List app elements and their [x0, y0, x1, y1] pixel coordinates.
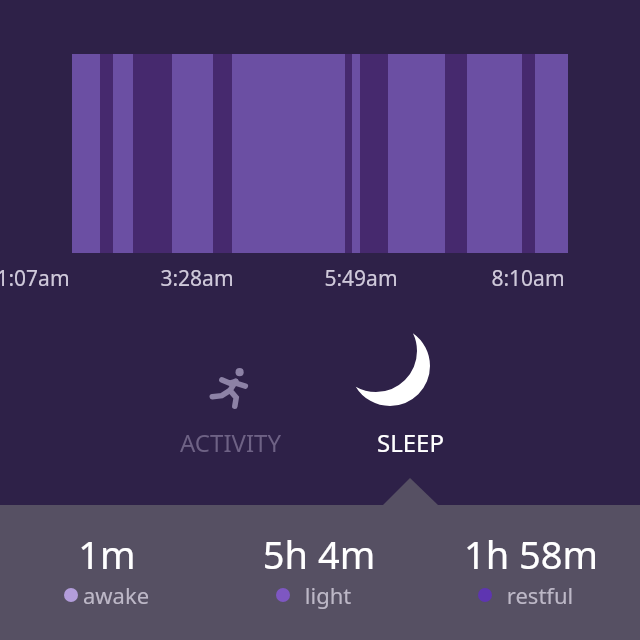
staticText: 1:07am [0, 264, 93, 293]
button[interactable]: 1m [7, 528, 207, 618]
staticText: 5h 4m [219, 528, 419, 580]
staticText: 5:49am [301, 264, 421, 293]
staticText: ACTIVITY [180, 426, 281, 459]
button[interactable]: 5h 4m [219, 528, 419, 618]
staticText: 1h 58m [431, 528, 631, 580]
staticText: 3:28am [137, 264, 257, 293]
staticText: SLEEP [377, 426, 444, 459]
button[interactable]: SLEEP [340, 358, 480, 468]
staticText: 8:10am [468, 264, 588, 293]
staticText: restful [440, 580, 640, 610]
staticText: light [228, 580, 428, 610]
staticText: awake [16, 580, 216, 610]
staticText: 1m [7, 528, 207, 580]
button[interactable]: 1h 58m [431, 528, 631, 618]
button[interactable]: ACTIVITY [160, 358, 300, 468]
